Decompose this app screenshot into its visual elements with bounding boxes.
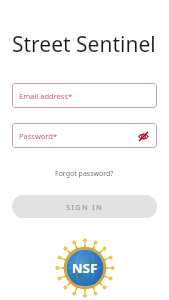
button[interactable]: Show password (136, 129, 150, 143)
button[interactable]: Forgot password? (51, 167, 118, 181)
staticText: Forgot password? (55, 169, 114, 179)
staticText: SIGN IN (66, 202, 103, 212)
staticText: Password* (19, 131, 58, 141)
button[interactable]: Email address* (12, 83, 157, 108)
button[interactable]: SIGN IN (12, 195, 157, 218)
staticText: Street Sentinel (12, 30, 156, 59)
button[interactable]: Password* (12, 123, 157, 148)
staticText: Email address* (19, 91, 73, 101)
staticText: NSF (72, 259, 98, 277)
